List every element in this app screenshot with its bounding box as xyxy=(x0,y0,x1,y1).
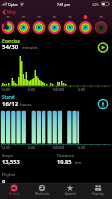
button[interactable] xyxy=(32,14,47,35)
staticText: 6:00 xyxy=(28,87,36,92)
staticText: 6:00 xyxy=(78,145,86,150)
staticText: Optus xyxy=(8,2,18,7)
button[interactable] xyxy=(96,40,110,54)
staticText: hours xyxy=(20,102,32,108)
staticText: NOON xyxy=(53,87,65,92)
staticText: Distance xyxy=(57,153,74,159)
staticText: minutes xyxy=(22,45,39,51)
staticText: Sharing xyxy=(92,192,104,196)
staticText: 6:00 xyxy=(28,145,36,150)
button[interactable] xyxy=(0,183,28,199)
staticText: Flights xyxy=(2,172,16,178)
button[interactable] xyxy=(16,14,31,35)
staticText: Awards xyxy=(65,192,77,196)
button[interactable] xyxy=(47,14,62,35)
staticText: Exercise xyxy=(2,38,20,44)
staticText: History xyxy=(9,192,20,196)
staticText: 12:00 xyxy=(1,145,11,150)
button[interactable] xyxy=(56,183,84,199)
button[interactable] xyxy=(96,97,110,111)
staticText: 10.85 xyxy=(57,158,72,166)
button[interactable] xyxy=(78,14,93,35)
staticText: 6:00 xyxy=(78,87,86,92)
staticText: May xyxy=(7,9,17,15)
button[interactable] xyxy=(94,14,109,35)
staticText: 54/30 xyxy=(2,43,19,51)
button[interactable] xyxy=(0,8,22,16)
button[interactable] xyxy=(84,183,112,199)
staticText: 12:00 xyxy=(1,87,11,92)
staticText: km xyxy=(75,160,81,165)
staticText: 9 xyxy=(2,178,6,183)
staticText: Stand xyxy=(2,94,15,100)
staticText: 13,553 xyxy=(2,158,20,166)
staticText: 34% xyxy=(92,2,99,7)
button[interactable] xyxy=(28,183,56,199)
staticText: 16/12 xyxy=(2,100,19,108)
staticText: Workouts xyxy=(35,192,50,196)
staticText: Steps xyxy=(2,153,13,159)
staticText: 7:01 pm xyxy=(57,2,70,7)
button[interactable] xyxy=(63,14,78,35)
staticText: NOON xyxy=(53,145,65,150)
button[interactable] xyxy=(1,14,16,35)
